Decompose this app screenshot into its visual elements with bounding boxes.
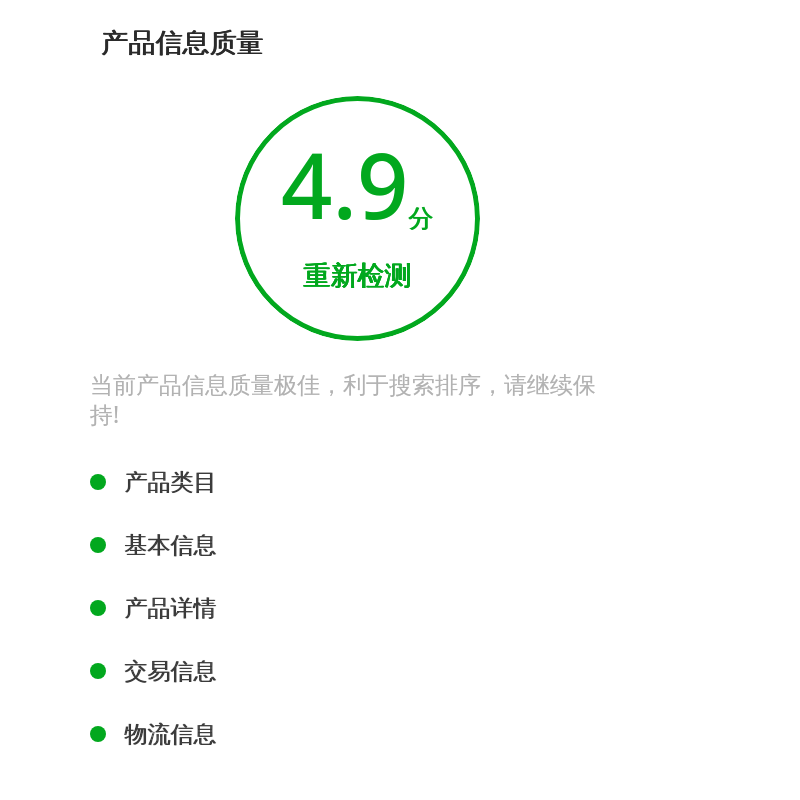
staticText: 产品详情 <box>124 594 216 623</box>
staticText: 产品信息质量 <box>102 26 264 60</box>
staticText: 重新检测 <box>304 259 412 293</box>
staticText: 重新检测 <box>303 259 411 293</box>
staticText: 交易信息 <box>125 657 217 686</box>
staticText: 基本信息 <box>125 531 217 560</box>
staticText: 交易信息 <box>124 657 216 686</box>
staticText: 产品信息质量 <box>101 26 263 60</box>
button[interactable]: 产品详情 <box>78 584 378 632</box>
button[interactable]: 产品类目 <box>78 458 378 506</box>
staticText: 物流信息 <box>125 720 217 749</box>
button[interactable]: 4.9 <box>235 96 480 341</box>
staticText: 重新检测 <box>304 259 412 293</box>
staticText: 当前产品信息质量极佳，利于搜索排序，请继续保 持! <box>90 371 630 430</box>
staticText: 产品类目 <box>125 468 217 497</box>
staticText: 分 <box>408 203 433 234</box>
staticText: 基本信息 <box>124 531 216 560</box>
staticText: 重新检测 <box>303 259 411 293</box>
button[interactable]: 产品信息质量 <box>88 14 280 66</box>
staticText: 物流信息 <box>124 720 216 749</box>
staticText: 产品类目 <box>124 468 216 497</box>
button[interactable]: 物流信息 <box>78 710 378 758</box>
staticText: 产品详情 <box>125 594 217 623</box>
staticText: 产品信息质量 <box>101 26 263 60</box>
button[interactable]: 交易信息 <box>78 647 378 695</box>
staticText: 分 <box>409 203 434 234</box>
staticText: 4.9 <box>281 123 409 246</box>
button[interactable]: 基本信息 <box>78 521 378 569</box>
staticText: 产品信息质量 <box>102 26 264 60</box>
